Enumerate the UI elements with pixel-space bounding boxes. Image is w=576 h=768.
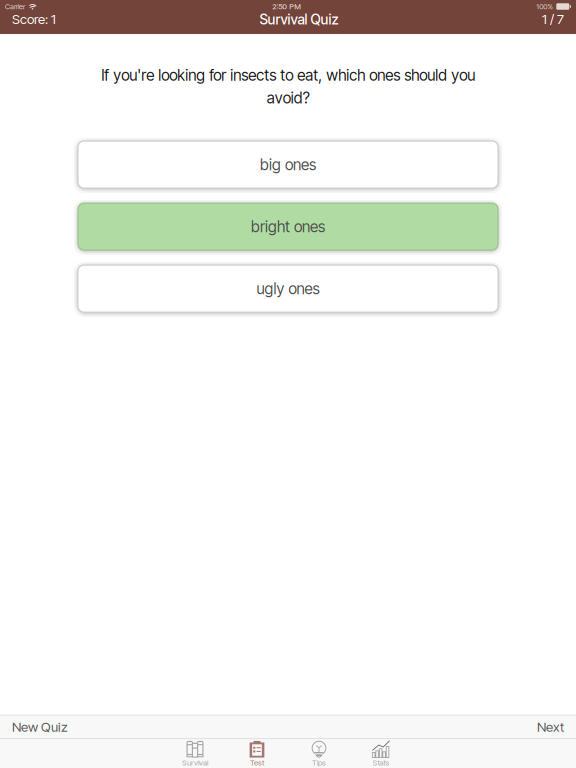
staticText: Score: 1 [12,11,56,27]
button[interactable]: Next [535,719,566,735]
staticText: big ones [260,155,316,174]
staticText: bright ones [251,217,325,236]
button[interactable]: New Quiz [10,719,70,735]
button[interactable]: Test [226,739,288,768]
button[interactable]: Tips [288,739,350,768]
staticText: 1 / 7 [542,11,564,27]
button[interactable]: ugly ones [78,265,498,312]
staticText: 100% [536,2,553,11]
staticText: New Quiz [12,719,68,735]
button[interactable]: 1 / 7 [542,13,564,34]
staticText: Stats [372,758,389,767]
staticText: ugly ones [256,279,319,298]
button[interactable]: bright ones [78,203,498,250]
staticText: Next [537,719,564,735]
button[interactable]: Stats [350,739,412,768]
button[interactable]: Score: 1 [12,13,56,34]
staticText: Tips [312,758,326,767]
staticText: Test [250,758,264,767]
staticText: 2:50 PM [272,2,301,11]
staticText: Survival Quiz [259,11,338,28]
button[interactable]: Survival [164,739,226,768]
staticText: Carrier [5,2,25,11]
staticText: If you're looking for insects to eat, wh… [101,66,475,107]
staticText: Survival [182,758,208,767]
button[interactable]: big ones [78,141,498,188]
